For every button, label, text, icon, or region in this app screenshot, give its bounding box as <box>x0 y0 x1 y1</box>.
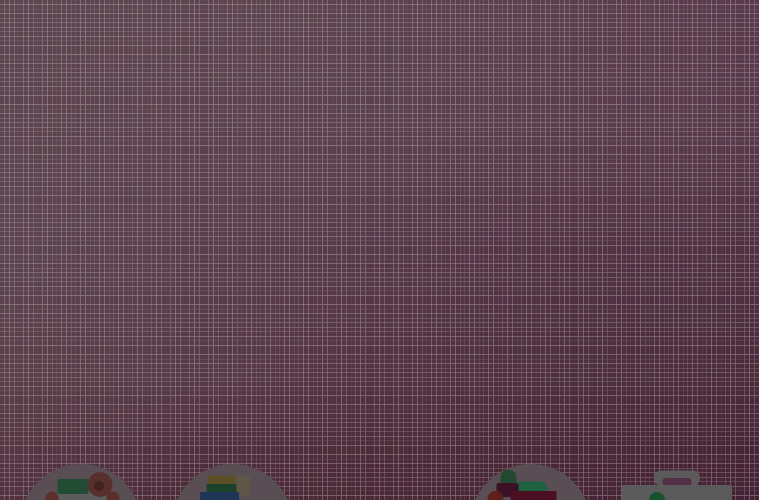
button[interactable]: Takeout <box>20 464 141 500</box>
button[interactable]: Groceries <box>470 464 591 500</box>
button[interactable]: Basket <box>621 470 733 500</box>
button[interactable]: Books <box>172 464 293 500</box>
